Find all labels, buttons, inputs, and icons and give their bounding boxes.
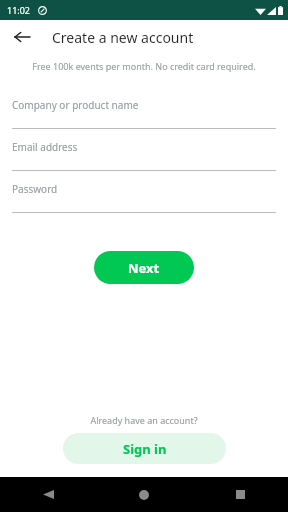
button[interactable]: Company or product name [12, 98, 276, 129]
button[interactable]: Back [0, 477, 96, 512]
button[interactable]: Sign in [63, 433, 226, 464]
staticText: Sign in [123, 440, 167, 458]
staticText: 11:02 [7, 4, 31, 16]
staticText: Password [12, 182, 58, 196]
staticText: Already have an account? [0, 414, 288, 426]
staticText: Next [128, 259, 160, 277]
staticText: Email address [12, 140, 78, 154]
button[interactable]: Back [8, 23, 36, 51]
button[interactable]: Password [12, 182, 276, 213]
staticText: Create a new account [52, 28, 194, 47]
button[interactable]: Recent apps [192, 477, 288, 512]
button[interactable]: Email address [12, 140, 276, 171]
staticText: Company or product name [12, 98, 139, 112]
button[interactable]: Next [94, 251, 194, 284]
button[interactable]: Home [96, 477, 192, 512]
staticText: Free 100k events per month. No credit ca… [10, 60, 278, 72]
